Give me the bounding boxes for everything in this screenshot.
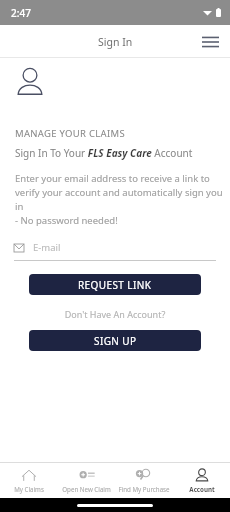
button[interactable]: My Claims (0, 463, 57, 498)
button[interactable]: Account (173, 463, 230, 498)
staticText: Don't Have An Account? (0, 308, 230, 320)
staticText: Sign In To Your FLS Easy Care Account (15, 146, 193, 160)
staticText: Account (189, 485, 215, 493)
button[interactable]: Find My Purchase (115, 463, 172, 498)
staticText: Open New Claim (62, 485, 111, 493)
staticText: Find My Purchase (118, 485, 170, 493)
staticText: Enter your email address to receive a li… (15, 172, 230, 227)
button[interactable]: Open New Claim (58, 463, 115, 498)
staticText: My Claims (14, 485, 44, 493)
button[interactable]: Menu (198, 30, 222, 54)
button[interactable]: REQUEST LINK (29, 274, 201, 295)
button[interactable]: SIGN UP (29, 330, 201, 351)
staticText: REQUEST LINK (78, 278, 152, 292)
staticText: Sign In (98, 35, 133, 49)
staticText: E-mail (33, 241, 61, 254)
staticText: 2:47 (11, 6, 31, 20)
staticText: SIGN UP (94, 334, 137, 348)
staticText: MANAGE YOUR CLAIMS (15, 127, 125, 140)
